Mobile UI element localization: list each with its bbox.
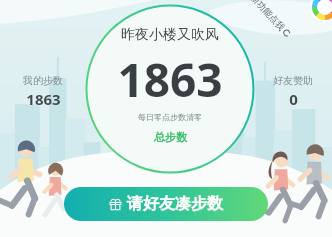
staticText: 每日零点步数清零 bbox=[138, 112, 202, 122]
button[interactable]: 活动入口 bbox=[310, 0, 332, 22]
button[interactable]: 我的步数 bbox=[12, 74, 74, 109]
staticText: 1863 bbox=[117, 48, 223, 111]
staticText: 1863 bbox=[26, 89, 61, 109]
button[interactable]: 新功能点我 bbox=[249, 0, 293, 39]
staticText: 我的步数 bbox=[23, 74, 63, 87]
button[interactable]: 好友赞助 bbox=[262, 74, 324, 109]
staticText: 请好友凑步数 bbox=[127, 194, 223, 214]
staticText: 新功能点我 bbox=[249, 0, 287, 33]
staticText: 好友赞助 bbox=[273, 74, 313, 87]
staticText: 0 bbox=[289, 89, 298, 109]
button[interactable]: 请好友凑步数 bbox=[64, 187, 268, 221]
staticText: 昨夜小楼又吹风 bbox=[121, 26, 219, 44]
staticText: 总步数 bbox=[154, 130, 187, 144]
